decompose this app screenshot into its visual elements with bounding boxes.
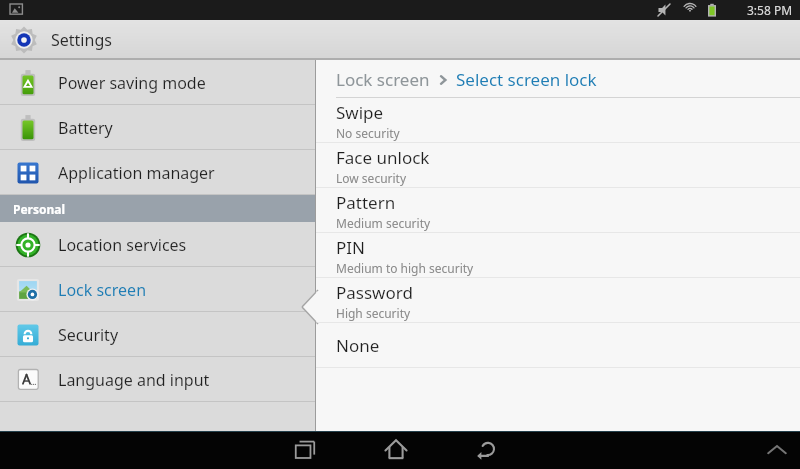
staticText: Lock screen [58,279,147,301]
staticText: Lock screen [336,68,430,91]
staticText: Language and input [58,369,210,391]
staticText: Swipe [336,101,384,124]
staticText: High security [336,305,411,321]
staticText: Low security [336,170,407,186]
button[interactable]: Application manager [0,150,316,195]
staticText: Application manager [58,162,215,184]
button[interactable]: Pattern [316,188,800,233]
button[interactable]: Password [316,278,800,323]
button[interactable]: None [316,323,800,368]
button[interactable]: PIN [316,233,800,278]
button[interactable]: Show notifications [754,431,800,469]
staticText: No security [336,125,400,141]
staticText: Medium to high security [336,260,474,276]
staticText: Medium security [336,215,431,231]
button[interactable]: Settings [0,20,800,60]
staticText: None [336,334,380,357]
button[interactable]: Security [0,312,316,357]
button[interactable]: Recent apps [280,431,330,469]
staticText: Location services [58,234,187,256]
button[interactable]: Back [461,431,511,469]
staticText: Security [58,324,119,346]
button[interactable]: Battery [0,105,316,150]
button[interactable]: Home [371,431,421,469]
staticText: 3:58 PM [747,2,793,18]
staticText: Select screen lock [456,68,597,91]
button[interactable]: Face unlock [316,143,800,188]
staticText: PIN [336,236,365,259]
button[interactable]: Lock screen [0,267,316,312]
staticText: Power saving mode [58,72,206,94]
button[interactable]: Power saving mode [0,60,316,105]
staticText: Pattern [336,191,396,214]
staticText: Battery [58,117,113,139]
button[interactable]: Language and input [0,357,316,402]
button[interactable]: Swipe [316,98,800,143]
staticText: Personal [13,201,66,217]
button[interactable]: Location services [0,222,316,267]
staticText: Password [336,281,413,304]
staticText: Settings [51,29,112,51]
staticText: Face unlock [336,146,430,169]
